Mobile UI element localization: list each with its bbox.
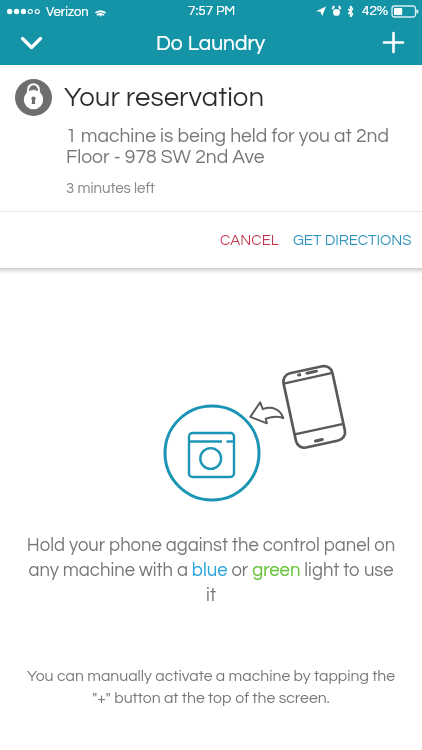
button[interactable]: Add machine (370, 22, 422, 65)
staticText: 42% (362, 4, 389, 18)
staticText: Do Laundry (156, 33, 266, 55)
button[interactable]: Collapse (0, 22, 52, 65)
staticText: Verizon (46, 5, 89, 18)
staticText: CANCEL (220, 233, 279, 248)
staticText: GET DIRECTIONS (293, 233, 412, 248)
staticText: You can manually activate a machine by t… (0, 668, 422, 706)
staticText: 1 machine is being held for you at 2nd F… (66, 126, 389, 167)
staticText: Your reservation (64, 83, 265, 111)
staticText: Hold your phone against the control pane… (25, 536, 397, 605)
button[interactable]: CANCEL (210, 222, 286, 259)
staticText: 3 minutes left (66, 181, 155, 196)
button[interactable]: GET DIRECTIONS (286, 222, 419, 259)
staticText: 7:57 PM (188, 4, 236, 18)
